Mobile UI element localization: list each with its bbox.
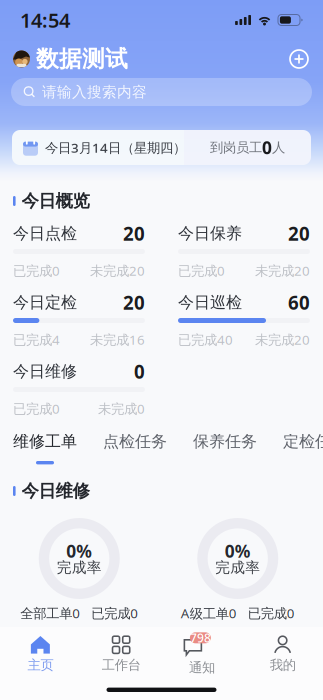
staticText: 主页 (27, 657, 53, 673)
staticText: 已完成0 (91, 604, 138, 622)
staticText: 未完成20 (255, 331, 310, 348)
staticText: 定检任务 (283, 432, 323, 451)
staticText: 未完成20 (255, 262, 310, 279)
staticText: 保养任务 (193, 432, 257, 451)
staticText: 今日保养 (178, 224, 242, 243)
staticText: 0% (225, 539, 251, 562)
staticText: 工作台 (102, 657, 141, 673)
staticText: 0% (66, 539, 92, 562)
button[interactable]: 主页 (0, 628, 81, 674)
staticText: 20 (288, 221, 310, 246)
staticText: 点检任务 (103, 432, 167, 451)
staticText: 已完成4 (13, 331, 60, 348)
staticText: 已完成0 (13, 262, 60, 279)
staticText: 全部工单0 (20, 604, 80, 622)
staticText: 维修工单 (13, 432, 77, 451)
staticText: 数据测试 (36, 45, 128, 73)
staticText: 20 (123, 290, 145, 315)
button[interactable]: Add (286, 46, 312, 72)
staticText: 今日巡检 (178, 293, 242, 312)
staticText: 798 (190, 630, 211, 646)
staticText: 到岗员工 (210, 139, 262, 156)
staticText: 我的 (270, 657, 296, 673)
staticText: 未完成20 (90, 262, 145, 279)
staticText: 通知 (189, 659, 215, 676)
staticText: 60 (288, 290, 310, 315)
button[interactable]: 798 (161, 628, 242, 674)
staticText: 已完成0 (13, 400, 60, 417)
staticText: 20 (123, 221, 145, 246)
staticText: 未完成16 (90, 331, 145, 348)
button[interactable]: 点检任务 (103, 434, 167, 470)
staticText: 今日定检 (13, 293, 77, 312)
staticText: 今日维修 (13, 362, 77, 381)
button[interactable]: 保养任务 (193, 434, 257, 470)
staticText: A级工单0 (181, 604, 237, 622)
staticText: 人 (272, 139, 285, 156)
staticText: 今日3月14日（星期四） (45, 139, 186, 156)
staticText: 已完成0 (178, 262, 225, 279)
button[interactable]: 我的 (242, 628, 323, 674)
staticText: 请输入搜索内容 (42, 83, 147, 101)
staticText: 完成率 (215, 558, 260, 576)
staticText: 今日概览 (22, 190, 90, 212)
staticText: 今日点检 (13, 224, 77, 243)
staticText: 0 (262, 136, 272, 159)
staticText: 今日维修 (22, 480, 90, 502)
staticText: 完成率 (57, 558, 102, 576)
staticText: 已完成40 (178, 331, 233, 348)
button[interactable]: 维修工单 (13, 434, 77, 470)
button[interactable]: 工作台 (81, 628, 162, 674)
staticText: 0 (134, 359, 145, 384)
staticText: 已完成0 (248, 604, 295, 622)
button[interactable]: 定检任务 (283, 434, 323, 470)
staticText: 未完成0 (98, 400, 145, 417)
button[interactable]: 请输入搜索内容 (11, 78, 312, 106)
staticText: 14:54 (20, 7, 70, 33)
